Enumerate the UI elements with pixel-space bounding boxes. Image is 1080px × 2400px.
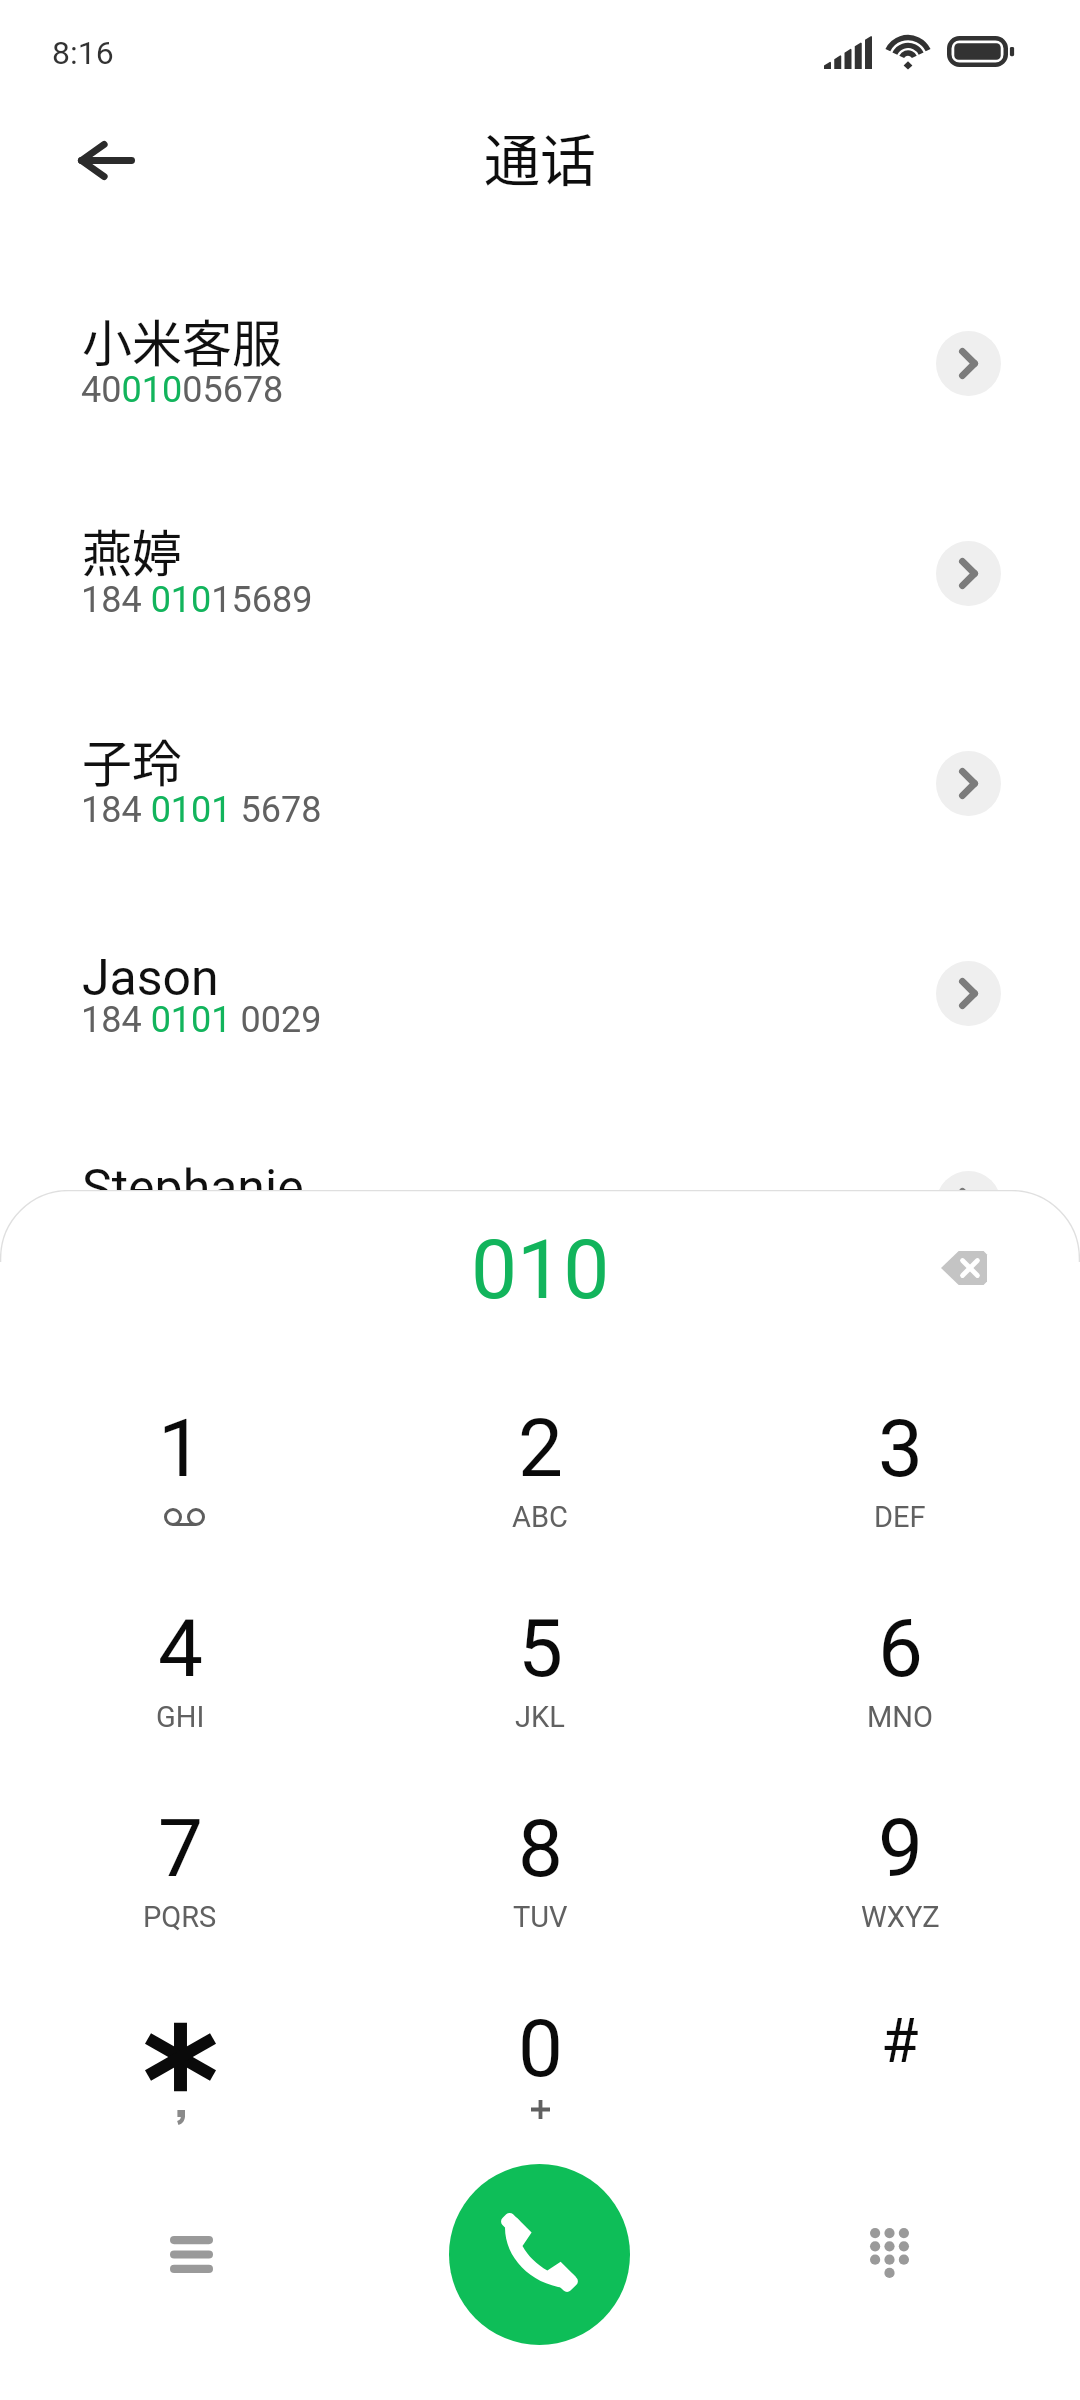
button[interactable]: Open contact details — [936, 1171, 1001, 1236]
staticText: PQRS — [143, 1900, 217, 1934]
staticText: Jason — [82, 949, 219, 1008]
button[interactable]: Open contact details — [936, 751, 1001, 816]
button[interactable] — [0, 900, 1080, 1110]
button[interactable]: 4 — [0, 1602, 360, 1802]
button[interactable]: Call — [449, 2164, 630, 2345]
staticText: TUV — [513, 1900, 568, 1934]
staticText: 184 01015689 — [81, 579, 313, 621]
staticText: 4 — [158, 1602, 203, 1696]
staticText: 5 — [518, 1602, 563, 1696]
button[interactable] — [0, 1110, 1080, 1320]
staticText: 0 — [518, 2002, 563, 2096]
button[interactable]: 6 — [720, 1602, 1080, 1802]
staticText: DEF — [874, 1500, 926, 1534]
button[interactable] — [0, 270, 1080, 480]
staticText: # — [881, 2005, 919, 2076]
staticText: Stephanie — [82, 1159, 304, 1218]
button[interactable]: # — [720, 2002, 1080, 2202]
staticText: 3 — [878, 1402, 923, 1496]
button[interactable]: Open contact details — [936, 961, 1001, 1026]
button[interactable]: 8 — [360, 1802, 720, 2002]
staticText: 2 — [518, 1402, 563, 1496]
staticText: 小米客服 — [82, 304, 282, 376]
staticText: 燕婷 — [82, 514, 182, 586]
button[interactable]: 2 — [360, 1402, 720, 1602]
staticText: 9 — [878, 1802, 923, 1896]
button[interactable] — [0, 2002, 360, 2202]
button[interactable]: 0 — [360, 2002, 720, 2202]
button[interactable]: Call log menu — [141, 2204, 241, 2304]
button[interactable]: Backspace — [916, 1220, 1012, 1316]
button[interactable]: Open contact details — [936, 541, 1001, 606]
staticText: WXYZ — [861, 1900, 940, 1934]
button[interactable] — [0, 690, 1080, 900]
staticText: 7 — [158, 1802, 203, 1896]
button[interactable]: 1 — [0, 1402, 360, 1602]
button[interactable]: 5 — [360, 1602, 720, 1802]
staticText: 子玲 — [82, 724, 182, 796]
button[interactable] — [0, 480, 1080, 690]
staticText: 8:16 — [52, 34, 114, 72]
button[interactable]: Back — [62, 116, 150, 204]
staticText: 6 — [878, 1602, 923, 1696]
staticText: MNO — [867, 1700, 933, 1734]
staticText: ABC — [512, 1500, 568, 1534]
staticText: JKL — [515, 1700, 565, 1734]
button[interactable]: Open contact details — [936, 331, 1001, 396]
staticText: 4001005678 — [81, 369, 284, 411]
button[interactable]: 7 — [0, 1802, 360, 2002]
button[interactable]: 9 — [720, 1802, 1080, 2002]
staticText: 184 0101 5678 — [81, 789, 322, 831]
staticText: 1 — [158, 1402, 203, 1496]
staticText: GHI — [156, 1700, 205, 1734]
staticText: 010 — [471, 1222, 610, 1318]
staticText: 8 — [518, 1802, 563, 1896]
staticText: 通话 — [484, 116, 596, 197]
button[interactable]: 3 — [720, 1402, 1080, 1602]
staticText: 184 0101 0029 — [81, 999, 322, 1041]
button[interactable]: Hide dialpad — [839, 2203, 939, 2303]
